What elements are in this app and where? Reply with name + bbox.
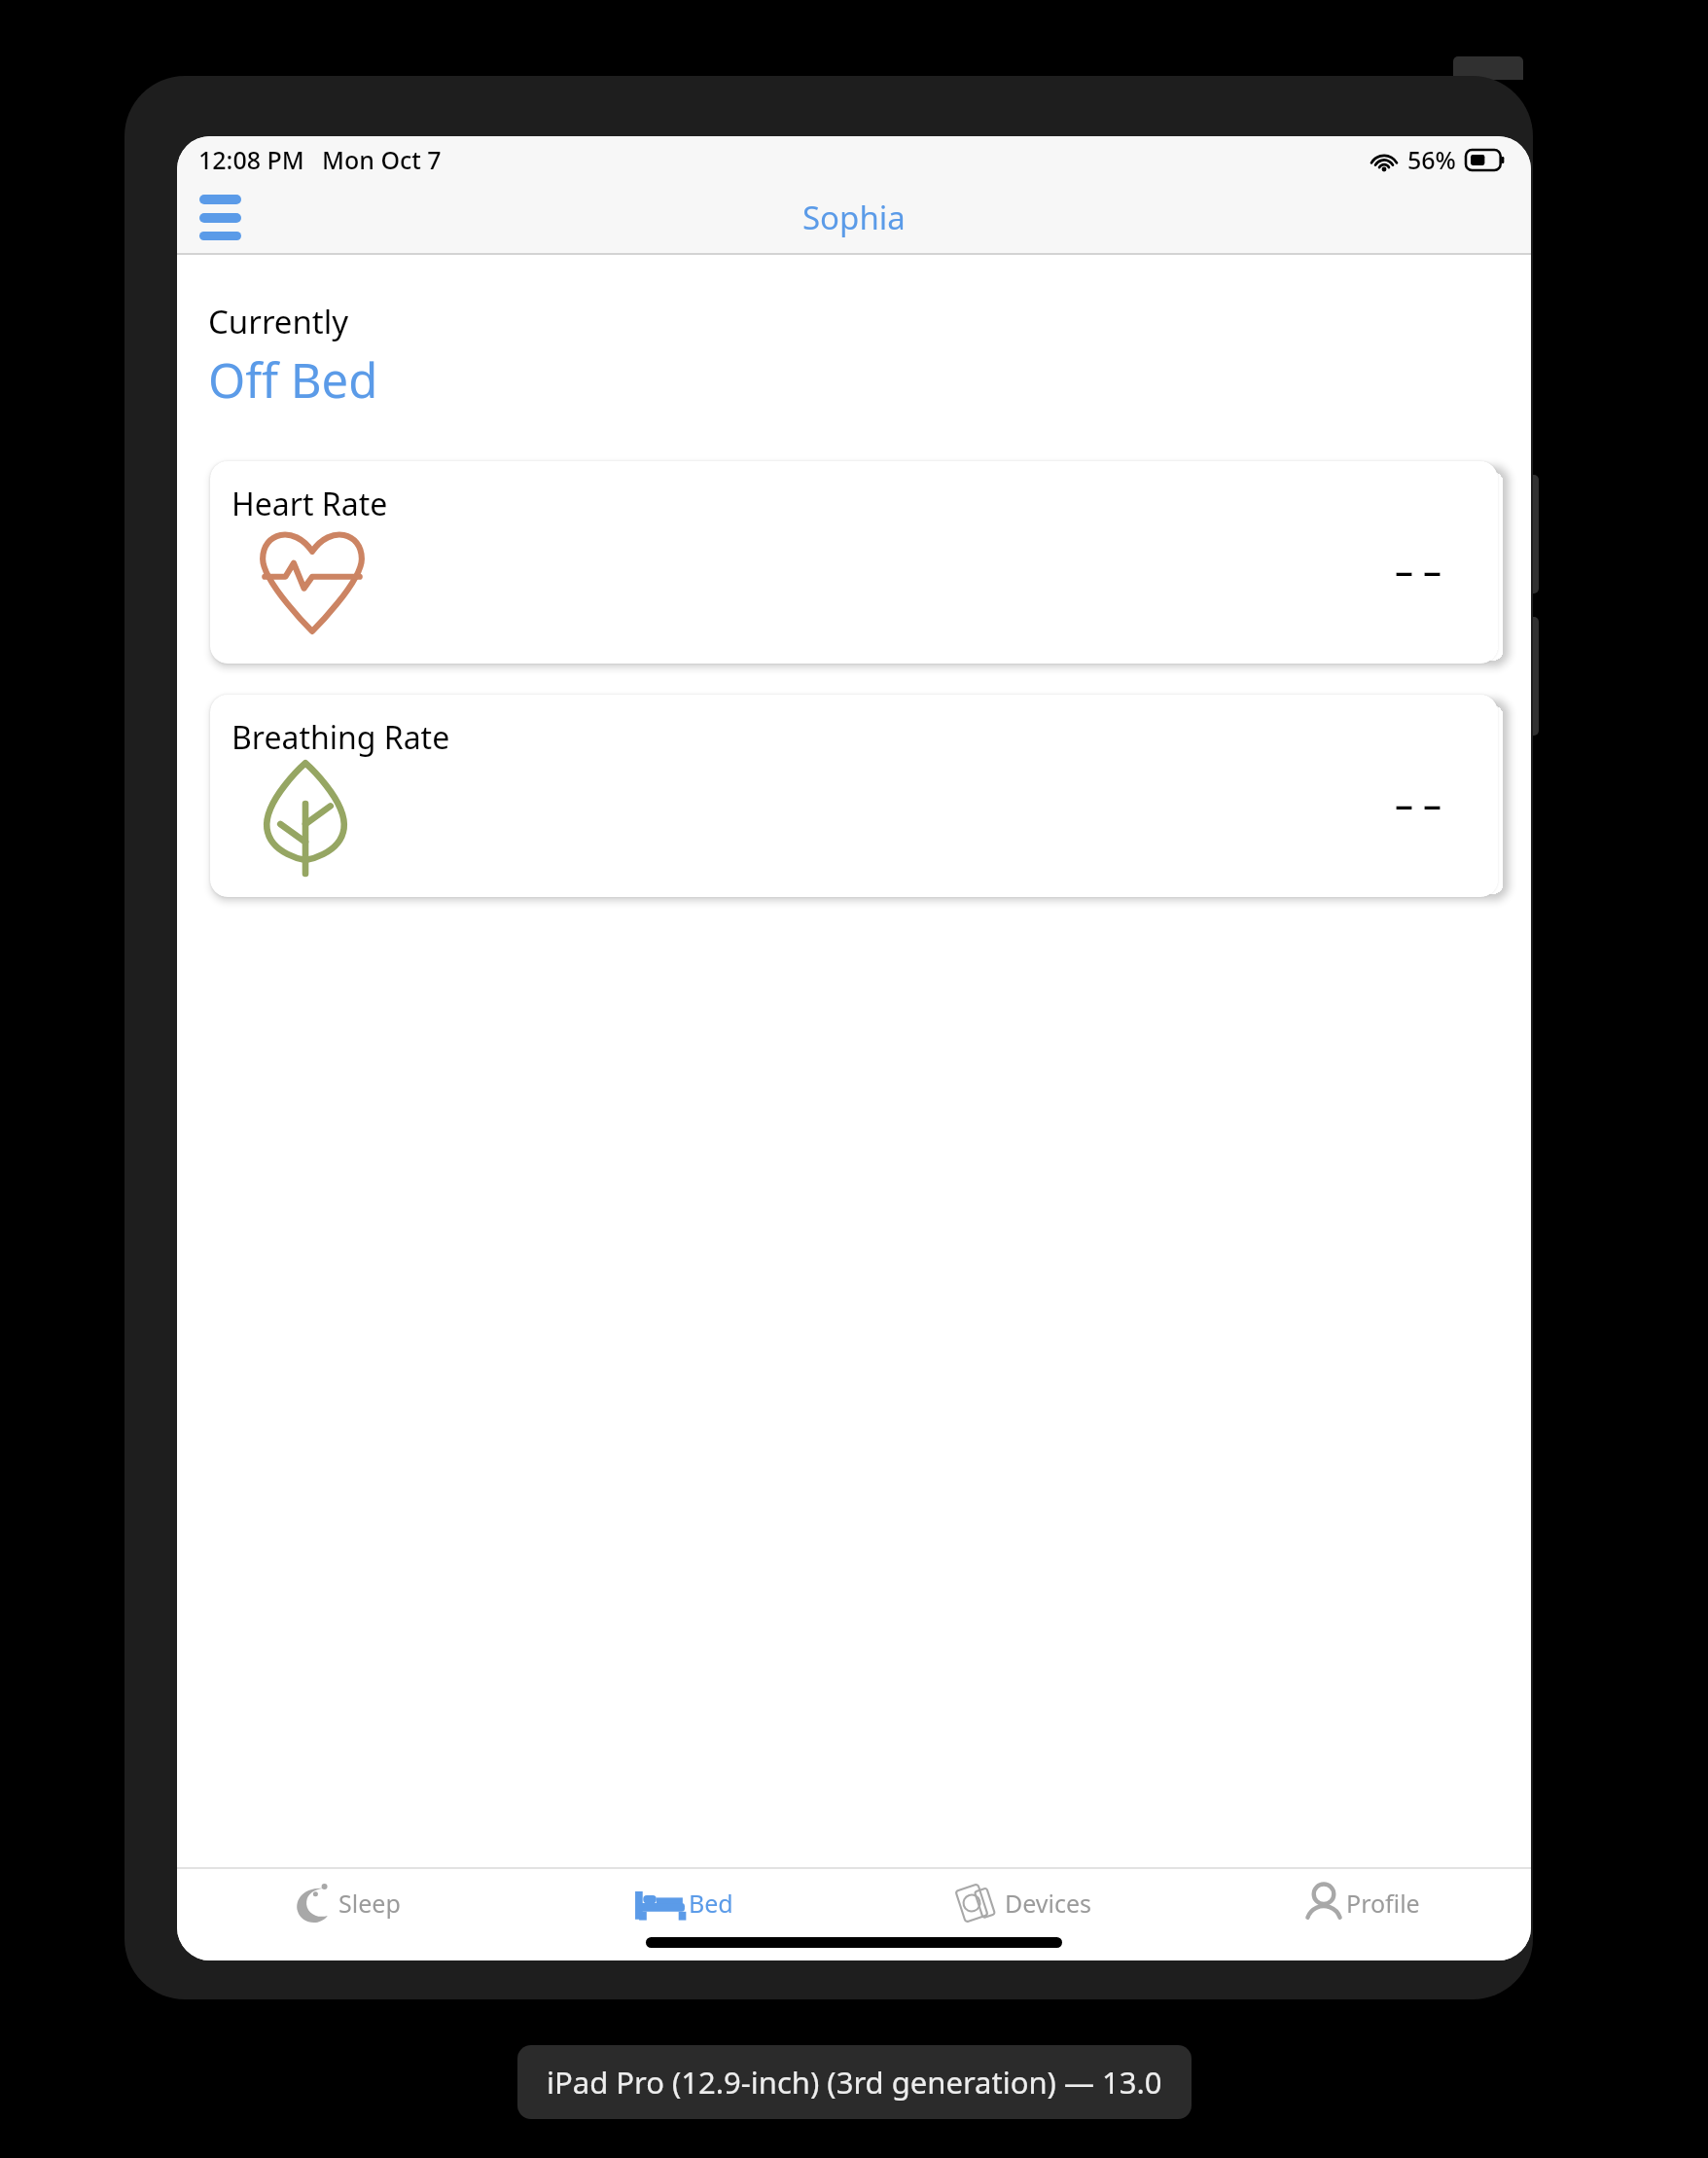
staticText: 56% [1407,143,1456,176]
staticText: Sophia [802,196,906,239]
button[interactable]: Heart Rate [210,461,1498,664]
staticText: Sleep [338,1887,401,1920]
staticText: 12:08 PM [198,143,304,176]
staticText: – – [1395,545,1441,595]
staticText: Currently [208,300,349,343]
button[interactable]: iPad Pro (12.9-inch) (3rd generation) — … [517,2045,1192,2119]
staticText: iPad Pro (12.9-inch) (3rd generation) — … [547,2062,1162,2103]
staticText: Breathing Rate [231,716,450,759]
button[interactable]: Devices [854,1869,1192,1937]
staticText: Profile [1346,1887,1420,1920]
button[interactable]: Menu [181,182,260,253]
staticText: Off Bed [208,347,378,413]
staticText: Devices [1005,1887,1092,1920]
staticText: Bed [689,1887,733,1920]
staticText: Mon Oct 7 [322,143,442,176]
button[interactable]: Profile [1192,1869,1531,1937]
staticText: – – [1395,778,1441,829]
button[interactable]: Sleep [177,1869,516,1937]
button[interactable]: Breathing Rate [210,695,1498,897]
staticText: Heart Rate [231,483,388,525]
button[interactable]: Bed [516,1869,854,1937]
